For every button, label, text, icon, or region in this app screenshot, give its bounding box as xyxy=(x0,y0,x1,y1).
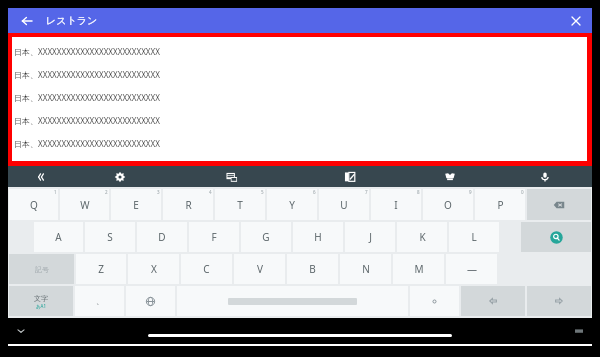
button[interactable]: Space xyxy=(177,286,408,316)
staticText: 日本、XXXXXXXXXXXXXXXXXXXXXXXXXX xyxy=(14,46,160,57)
button[interactable]: Close xyxy=(566,11,586,31)
button[interactable]: Back xyxy=(16,10,38,32)
button[interactable]: M xyxy=(393,254,444,284)
button[interactable]: J xyxy=(345,222,395,252)
staticText: F xyxy=(211,230,217,244)
staticText: 7 xyxy=(365,189,368,195)
button[interactable]: A xyxy=(34,222,83,252)
staticText: O xyxy=(444,198,452,212)
staticText: 6 xyxy=(313,189,316,195)
staticText: 3 xyxy=(157,189,160,195)
button[interactable]: V xyxy=(234,254,285,284)
button[interactable]: Change language xyxy=(126,286,175,316)
button[interactable]: H xyxy=(293,222,343,252)
staticText: N xyxy=(362,262,370,276)
staticText: Z xyxy=(98,262,104,276)
staticText: 0 xyxy=(521,189,524,195)
button[interactable]: I xyxy=(371,189,421,220)
button[interactable]: F xyxy=(189,222,239,252)
staticText: B xyxy=(309,262,316,276)
button[interactable]: L xyxy=(449,222,499,252)
button[interactable]: 文字 xyxy=(9,286,73,316)
staticText: K xyxy=(419,230,426,244)
staticText: 9 xyxy=(469,189,472,195)
button[interactable]: Move cursor left xyxy=(461,286,525,316)
button[interactable]: Move cursor right xyxy=(527,286,591,316)
button[interactable]: E xyxy=(111,189,161,220)
staticText: X xyxy=(151,262,157,276)
button[interactable]: X xyxy=(128,254,179,284)
button[interactable]: D xyxy=(137,222,187,252)
button[interactable]: P xyxy=(475,189,525,220)
button[interactable]: R xyxy=(163,189,213,220)
button[interactable]: C xyxy=(181,254,232,284)
staticText: レストラン xyxy=(46,14,98,27)
staticText: Q xyxy=(30,198,38,212)
staticText: D xyxy=(158,230,166,244)
button[interactable]: N xyxy=(340,254,391,284)
staticText: S xyxy=(107,230,113,244)
button[interactable]: B xyxy=(287,254,338,284)
staticText: I xyxy=(394,198,398,212)
staticText: 日本、XXXXXXXXXXXXXXXXXXXXXXXXXX xyxy=(14,69,160,80)
button[interactable]: — xyxy=(446,254,497,284)
staticText: 文字 xyxy=(34,294,48,303)
button[interactable]: Stickers xyxy=(401,166,498,187)
button[interactable]: Settings xyxy=(74,166,165,187)
staticText: 2 xyxy=(105,189,108,195)
staticText: — xyxy=(467,262,477,276)
button[interactable]: Home xyxy=(148,334,452,337)
staticText: 日本、XXXXXXXXXXXXXXXXXXXXXXXXXX xyxy=(14,138,160,149)
staticText: G xyxy=(262,230,270,244)
staticText: E xyxy=(133,198,139,212)
staticText: T xyxy=(237,198,243,212)
button[interactable]: Notes xyxy=(298,166,401,187)
button[interactable]: O xyxy=(423,189,473,220)
staticText: 日本、XXXXXXXXXXXXXXXXXXXXXXXXXX xyxy=(14,92,160,103)
staticText: V xyxy=(257,262,263,276)
button[interactable]: 記号 xyxy=(9,254,74,284)
staticText: U xyxy=(340,198,348,212)
staticText: L xyxy=(471,230,477,244)
button[interactable]: Voice input xyxy=(498,166,592,187)
staticText: 記号 xyxy=(35,265,49,274)
staticText: W xyxy=(80,198,90,212)
staticText: H xyxy=(314,230,322,244)
button[interactable]: Backspace xyxy=(527,189,591,220)
staticText: C xyxy=(203,262,210,276)
staticText: 8 xyxy=(417,189,420,195)
staticText: M xyxy=(414,262,424,276)
button[interactable]: G xyxy=(241,222,291,252)
staticText: Y xyxy=(289,198,295,212)
staticText: R xyxy=(185,198,192,212)
button[interactable]: Z xyxy=(76,254,126,284)
button[interactable]: Keyboard layout xyxy=(165,166,298,187)
button[interactable]: Previous xyxy=(8,166,74,187)
staticText: 、 xyxy=(96,296,104,306)
staticText: 日本、XXXXXXXXXXXXXXXXXXXXXXXXXX xyxy=(14,115,160,126)
button[interactable]: W xyxy=(60,189,109,220)
staticText: 1 xyxy=(54,189,57,195)
button[interactable]: Q xyxy=(9,189,58,220)
button[interactable]: T xyxy=(215,189,265,220)
button[interactable]: U xyxy=(319,189,369,220)
staticText: 4 xyxy=(209,189,212,195)
button[interactable]: K xyxy=(397,222,447,252)
button[interactable] xyxy=(410,286,459,316)
button[interactable]: Y xyxy=(267,189,317,220)
staticText: P xyxy=(497,198,504,212)
button[interactable]: S xyxy=(85,222,135,252)
staticText: A xyxy=(55,230,62,244)
staticText: あA1 xyxy=(36,303,47,309)
staticText: 5 xyxy=(261,189,264,195)
staticText: J xyxy=(369,230,372,244)
button[interactable]: Hide keyboard xyxy=(12,322,30,340)
button[interactable]: Search xyxy=(521,222,591,252)
button[interactable]: Switch keyboard xyxy=(570,322,588,340)
